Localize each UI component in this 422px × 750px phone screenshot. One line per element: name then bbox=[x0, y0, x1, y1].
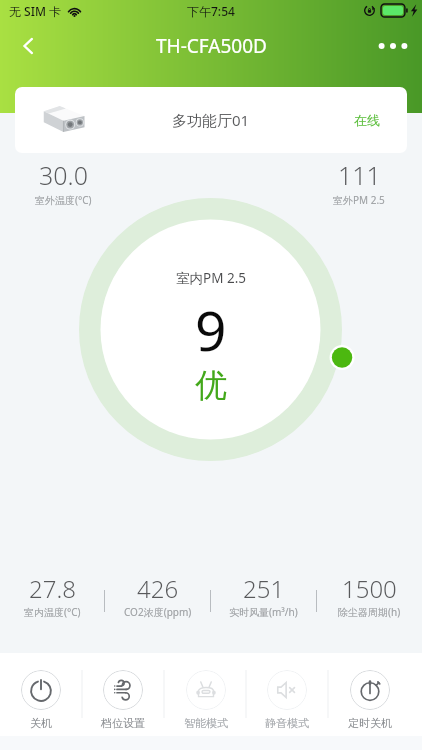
staticText: 多功能厅01 bbox=[172, 110, 250, 130]
button[interactable]: More options bbox=[370, 23, 416, 69]
staticText: 室外温度(°C) bbox=[35, 193, 92, 207]
staticText: 111 bbox=[338, 158, 381, 192]
button[interactable]: 智能模式 bbox=[164, 653, 248, 750]
staticText: 30.0 bbox=[39, 158, 88, 192]
button[interactable]: 定时关机 bbox=[328, 653, 412, 750]
staticText: 除尘器周期(h) bbox=[338, 605, 401, 619]
staticText: 室外PM 2.5 bbox=[333, 193, 385, 207]
staticText: 9 bbox=[195, 292, 227, 367]
staticText: 在线 bbox=[354, 112, 380, 128]
staticText: 关机 bbox=[30, 716, 52, 730]
staticText: 室内PM 2.5 bbox=[176, 269, 246, 287]
button[interactable]: 多功能厅01 bbox=[15, 87, 407, 153]
staticText: TH-CFA500D bbox=[156, 33, 267, 59]
button[interactable]: 关机 bbox=[0, 653, 83, 750]
staticText: 1500 bbox=[342, 572, 397, 605]
staticText: 下午7:54 bbox=[187, 3, 235, 19]
button[interactable]: Back bbox=[8, 26, 48, 66]
staticText: 实时风量(m³/h) bbox=[229, 605, 298, 619]
button[interactable]: 静音模式 bbox=[245, 653, 329, 750]
staticText: 室内温度(°C) bbox=[24, 605, 81, 619]
staticText: 定时关机 bbox=[348, 716, 392, 730]
staticText: 251 bbox=[243, 572, 285, 605]
staticText: 27.8 bbox=[29, 572, 76, 605]
button[interactable]: 档位设置 bbox=[81, 653, 165, 750]
staticText: 智能模式 bbox=[184, 716, 228, 730]
staticText: 优 bbox=[195, 365, 227, 405]
staticText: CO2浓度(ppm) bbox=[124, 605, 192, 619]
staticText: 426 bbox=[137, 572, 179, 605]
staticText: 无 SIM 卡 bbox=[9, 3, 62, 19]
staticText: 档位设置 bbox=[101, 716, 145, 730]
staticText: 静音模式 bbox=[265, 716, 309, 730]
